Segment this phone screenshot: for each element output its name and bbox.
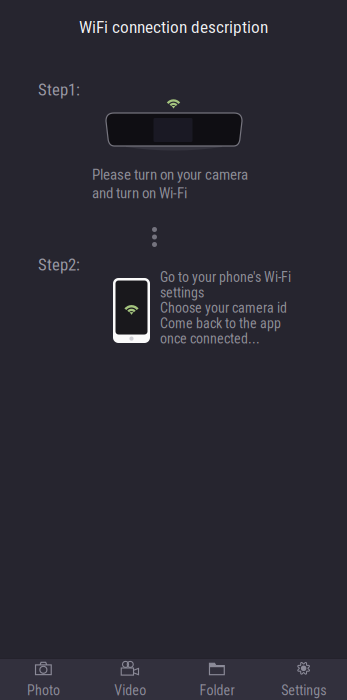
button[interactable]: Video (87, 654, 174, 700)
staticText: Video (114, 682, 146, 699)
staticText: Step2: (38, 255, 80, 274)
staticText: Please turn on your camera (92, 166, 248, 183)
staticText: Come back to the app (160, 315, 281, 332)
staticText: Settings (281, 682, 326, 699)
button[interactable]: Settings (260, 654, 347, 700)
staticText: Photo (27, 682, 60, 699)
button[interactable]: Photo (0, 654, 87, 700)
staticText: Go to your phone's Wi-Fi (160, 269, 291, 285)
button[interactable]: Folder (173, 654, 260, 700)
staticText: and turn on Wi-Fi (92, 184, 187, 202)
staticText: once connected... (160, 331, 260, 347)
staticText: settings (160, 284, 204, 301)
staticText: Folder (199, 682, 234, 699)
staticText: Step1: (38, 80, 80, 99)
staticText: WiFi connection description (79, 17, 268, 37)
staticText: Choose your camera id (160, 300, 287, 316)
